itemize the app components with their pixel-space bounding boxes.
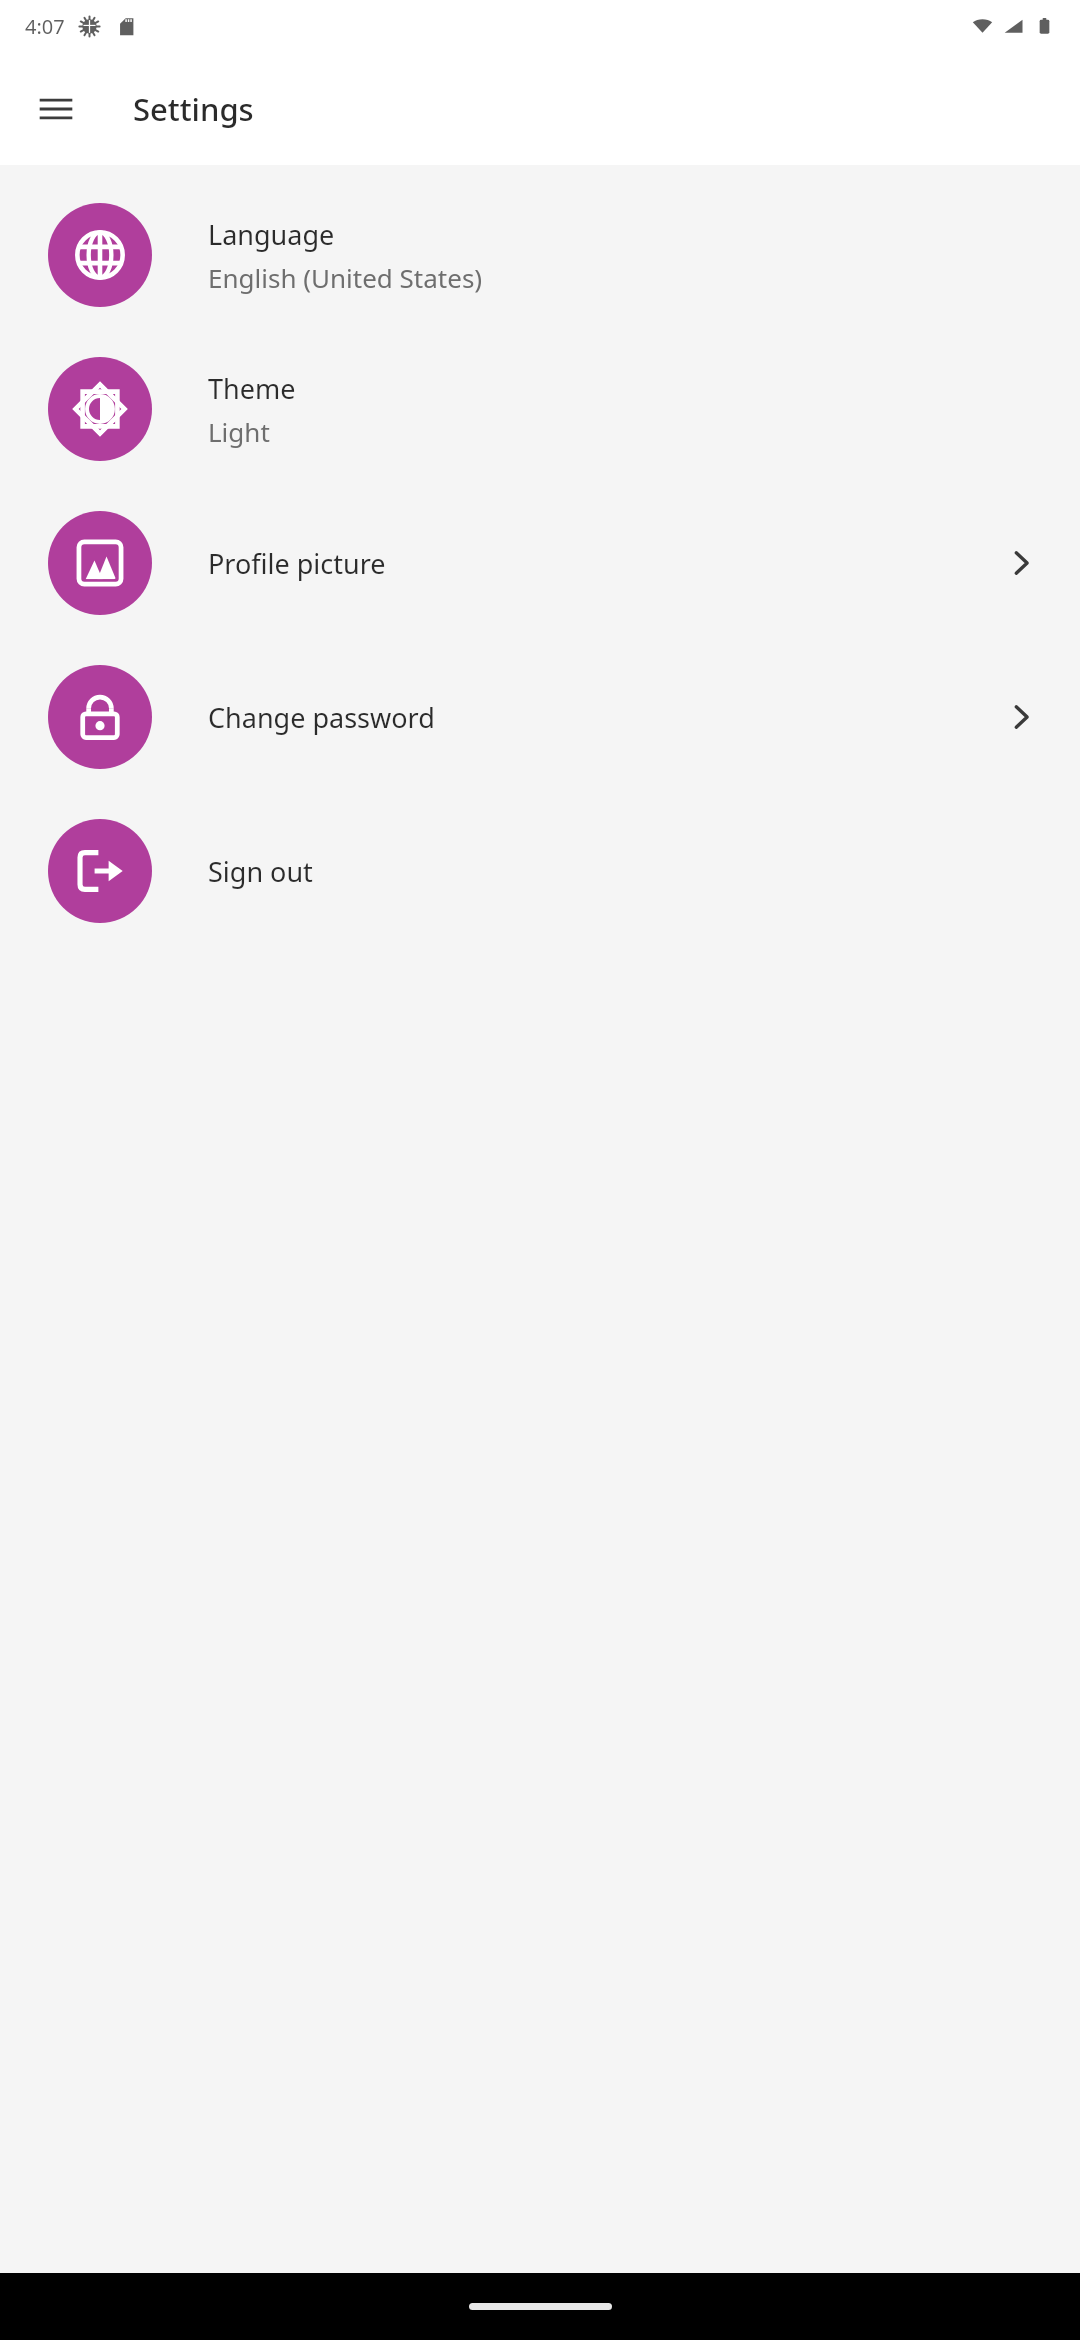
staticText: Change password	[208, 699, 435, 736]
button[interactable]: Change password	[0, 640, 1080, 794]
staticText: Settings	[133, 88, 254, 130]
button[interactable]: Sign out	[0, 794, 1080, 948]
staticText: 4:07	[25, 13, 65, 40]
staticText: English (United States)	[208, 260, 483, 295]
staticText: Language	[208, 216, 335, 253]
staticText: Theme	[208, 370, 296, 407]
button[interactable]: Language	[0, 178, 1080, 332]
button[interactable]: Theme	[0, 332, 1080, 486]
button[interactable]: Profile picture	[0, 486, 1080, 640]
staticText: Light	[208, 414, 270, 449]
staticText: Sign out	[208, 853, 313, 890]
button[interactable]: Open navigation menu	[20, 73, 92, 145]
staticText: Profile picture	[208, 545, 386, 582]
